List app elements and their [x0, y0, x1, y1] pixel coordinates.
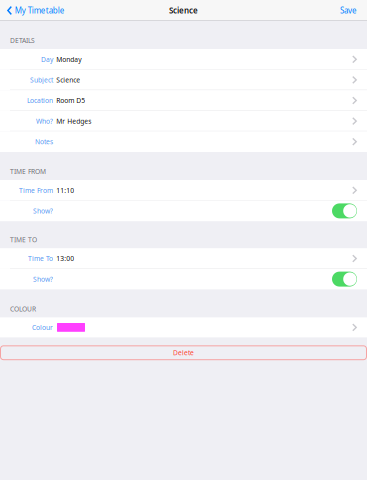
staticText: Who?: [36, 117, 53, 126]
button[interactable]: Time From: [0, 180, 367, 201]
button[interactable]: Save: [340, 0, 367, 21]
staticText: My Timetable: [15, 5, 65, 16]
staticText: Science: [169, 5, 198, 16]
staticText: 13:00: [56, 254, 74, 263]
button[interactable]: Location: [0, 90, 367, 111]
staticText: Colour: [32, 323, 53, 332]
staticText: Notes: [35, 137, 53, 146]
button[interactable]: Show?: [0, 201, 367, 221]
staticText: Science: [56, 75, 80, 84]
staticText: Room D5: [56, 96, 85, 105]
button[interactable]: Time To: [0, 248, 367, 269]
button[interactable]: Notes: [0, 131, 367, 152]
staticText: Subject: [30, 75, 53, 84]
staticText: TIME TO: [10, 235, 37, 244]
staticText: 11:10: [56, 186, 74, 195]
staticText: Show?: [33, 206, 53, 215]
staticText: COLOUR: [10, 304, 36, 313]
button[interactable]: Delete: [0, 346, 366, 360]
staticText: Location: [27, 96, 53, 105]
staticText: Time From: [19, 186, 53, 195]
staticText: Monday: [56, 55, 81, 64]
staticText: Save: [340, 5, 357, 16]
staticText: Delete: [173, 348, 194, 357]
button[interactable]: Day: [0, 49, 367, 70]
staticText: Mr Hedges: [56, 117, 91, 126]
staticText: DETAILS: [10, 36, 35, 45]
button[interactable]: Show?: [0, 269, 367, 289]
staticText: TIME FROM: [10, 167, 46, 176]
staticText: Show?: [33, 275, 53, 284]
staticText: Day: [41, 55, 53, 64]
button[interactable]: My Timetable: [0, 0, 65, 21]
button[interactable]: Subject: [0, 70, 367, 90]
button[interactable]: Colour: [0, 317, 367, 337]
button[interactable]: Who?: [0, 111, 367, 131]
staticText: Time To: [28, 254, 53, 263]
